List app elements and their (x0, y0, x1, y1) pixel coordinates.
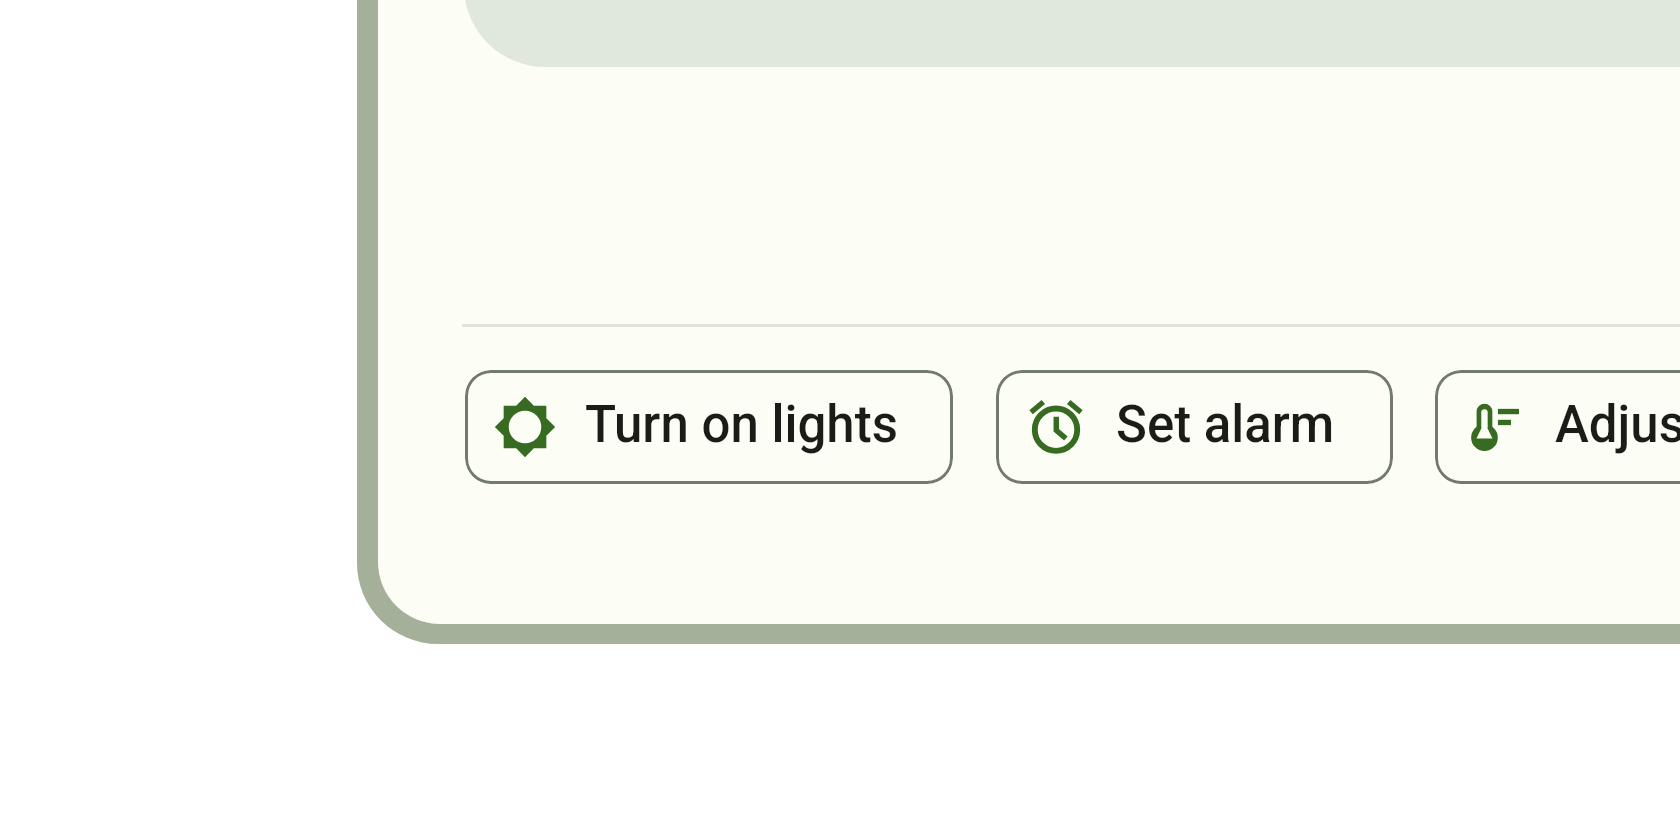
staticText: Adjust thermostat (1555, 395, 1680, 455)
button[interactable]: Turn on lights (465, 370, 953, 484)
other: Adjust thermostat (1463, 395, 1527, 459)
staticText: Turn on lights (585, 395, 898, 455)
other: Turn on lights (493, 395, 557, 459)
button[interactable]: Set alarm (996, 370, 1393, 484)
other: Set alarm (1024, 395, 1088, 459)
staticText: Set alarm (1116, 395, 1335, 455)
button[interactable]: Adjust thermostat (1435, 370, 1680, 484)
